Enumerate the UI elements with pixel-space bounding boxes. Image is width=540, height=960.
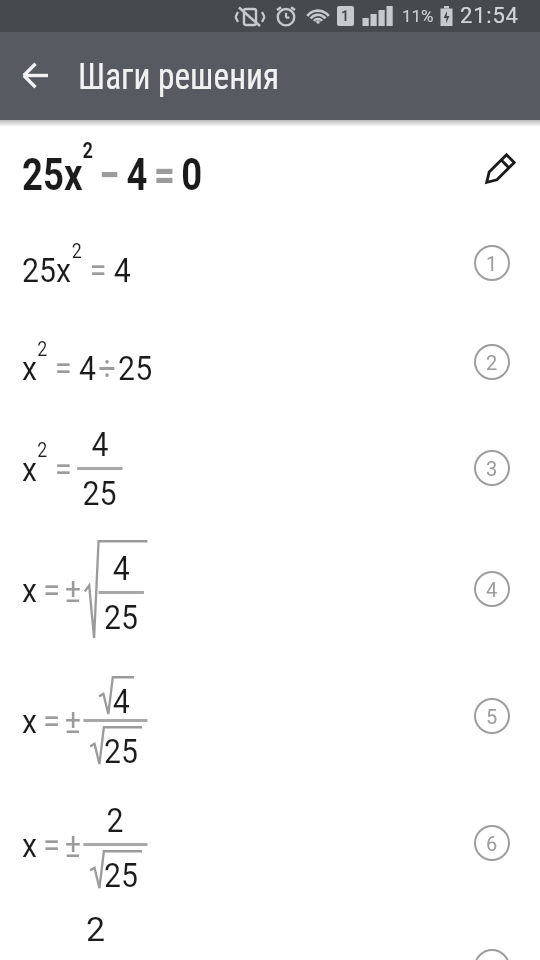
staticText: 2 bbox=[83, 138, 93, 164]
staticText: 21:54 bbox=[460, 3, 519, 29]
staticText: 3 bbox=[486, 457, 498, 480]
staticText: = bbox=[43, 825, 60, 865]
staticText: = bbox=[43, 701, 60, 741]
staticText: 25 bbox=[104, 731, 139, 765]
button[interactable]: 25x bbox=[0, 223, 540, 303]
staticText: 4 bbox=[114, 250, 131, 290]
staticText: 4 bbox=[127, 149, 148, 201]
staticText: 11% bbox=[402, 6, 434, 26]
button[interactable]: x bbox=[0, 322, 540, 402]
staticText: 0 bbox=[181, 149, 203, 201]
staticText: − bbox=[99, 149, 120, 201]
staticText: = bbox=[90, 250, 106, 290]
staticText: x bbox=[22, 701, 37, 741]
staticText: 1 bbox=[486, 252, 498, 275]
staticText: x bbox=[22, 570, 37, 610]
staticText: 2 bbox=[37, 438, 48, 461]
staticText: 2 bbox=[486, 351, 498, 374]
staticText: 2 bbox=[72, 239, 82, 262]
staticText: 4 bbox=[113, 681, 131, 715]
button[interactable] bbox=[14, 54, 58, 98]
staticText: 25 bbox=[82, 473, 117, 513]
button[interactable]: x bbox=[0, 661, 540, 771]
staticText: = bbox=[55, 348, 72, 388]
staticText: x bbox=[22, 449, 37, 489]
staticText: x bbox=[22, 348, 37, 388]
staticText: 25x bbox=[22, 149, 83, 201]
staticText: ± bbox=[65, 570, 82, 610]
staticText: = bbox=[43, 570, 60, 610]
staticText: 2 bbox=[106, 800, 124, 840]
staticText: 4 bbox=[113, 548, 131, 588]
staticText: 25 bbox=[104, 855, 139, 889]
button[interactable]: x bbox=[0, 788, 540, 898]
staticText: = bbox=[55, 449, 72, 489]
staticText: = bbox=[154, 149, 176, 201]
staticText: ÷ bbox=[98, 348, 116, 388]
staticText: ± bbox=[65, 825, 82, 865]
button[interactable]: x bbox=[0, 420, 540, 516]
staticText: Шаги решения bbox=[78, 55, 280, 98]
staticText: 2 bbox=[37, 337, 48, 360]
staticText: 6 bbox=[486, 832, 498, 855]
staticText: x bbox=[22, 825, 37, 865]
staticText: 25 bbox=[118, 348, 153, 388]
staticText: 4 bbox=[486, 578, 498, 601]
staticText: 1 bbox=[341, 8, 350, 24]
staticText: ± bbox=[65, 701, 82, 741]
staticText: 2 bbox=[86, 909, 106, 949]
staticText: 25x bbox=[22, 250, 72, 290]
staticText: 25 bbox=[104, 597, 139, 637]
staticText: 4 bbox=[91, 424, 109, 464]
staticText: 4 bbox=[79, 348, 97, 388]
button[interactable]: x bbox=[0, 534, 540, 644]
button[interactable] bbox=[476, 149, 520, 193]
staticText: 5 bbox=[486, 705, 498, 728]
